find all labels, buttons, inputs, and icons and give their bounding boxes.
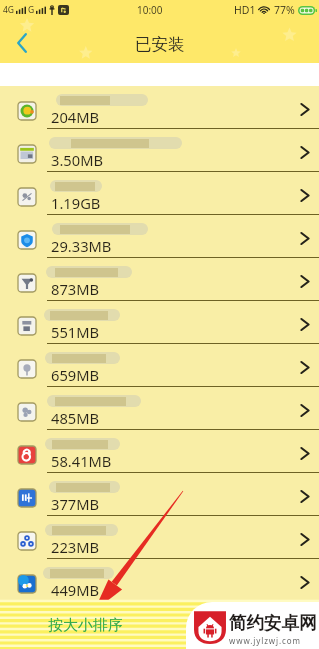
- button[interactable]: 1.19GB: [0, 172, 319, 215]
- staticText: 按大小排序: [48, 616, 123, 635]
- button[interactable]: 29.33MB: [0, 215, 319, 258]
- button[interactable]: 3.50MB: [0, 129, 319, 172]
- staticText: 449MB: [51, 580, 100, 600]
- staticText: HD1: [234, 3, 256, 17]
- button[interactable]: 551MB: [0, 301, 319, 344]
- staticText: 485MB: [51, 408, 100, 428]
- staticText: 1.19GB: [51, 193, 101, 213]
- staticText: 377MB: [51, 494, 100, 514]
- staticText: 3.50MB: [51, 150, 104, 170]
- button[interactable]: 873MB: [0, 258, 319, 301]
- button[interactable]: 377MB: [0, 473, 319, 516]
- staticText: 659MB: [51, 365, 100, 385]
- staticText: 223MB: [51, 537, 100, 557]
- button[interactable]: 按大小排序: [0, 601, 170, 649]
- staticText: G: [28, 4, 35, 16]
- button[interactable]: 204MB: [0, 86, 319, 129]
- staticText: 551MB: [51, 322, 100, 342]
- staticText: 873MB: [51, 279, 100, 299]
- staticText: 204MB: [51, 107, 100, 127]
- button[interactable]: 58.41MB: [0, 430, 319, 473]
- button[interactable]: Back: [0, 20, 43, 63]
- staticText: 77%: [274, 3, 295, 17]
- button[interactable]: 485MB: [0, 387, 319, 430]
- staticText: 已安装: [135, 34, 185, 55]
- staticText: 简约安卓网: [229, 612, 317, 634]
- staticText: 58.41MB: [51, 451, 112, 471]
- button[interactable]: 449MB: [0, 559, 319, 602]
- staticText: 10:00: [137, 3, 163, 17]
- staticText: www.jylzwj.com: [229, 635, 301, 646]
- button[interactable]: 223MB: [0, 516, 319, 559]
- button[interactable]: 659MB: [0, 344, 319, 387]
- staticText: 4G: [3, 4, 15, 16]
- staticText: 29.33MB: [51, 236, 112, 256]
